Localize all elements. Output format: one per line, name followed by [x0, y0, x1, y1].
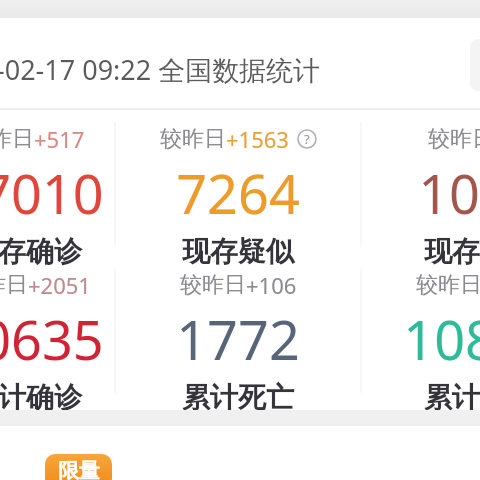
staticText: +2051 [28, 270, 91, 300]
staticText: 现存疑似 [182, 234, 294, 269]
button[interactable]: 较昨日 [150, 116, 326, 269]
staticText: 较昨日 [0, 271, 28, 299]
staticText: 较昨日 [0, 125, 34, 153]
staticText: 累计死亡 [182, 380, 294, 415]
staticText: 较昨日 [180, 271, 246, 299]
staticText: 27010 [0, 156, 104, 230]
staticText: 10844 [403, 302, 480, 376]
staticText: 1772 [176, 302, 300, 376]
staticText: ? [304, 130, 310, 148]
staticText: +106 [246, 270, 297, 300]
staticText: +1563 [226, 124, 289, 154]
button[interactable]: 较昨日 [0, 262, 114, 415]
button[interactable]: 说明 [297, 129, 317, 149]
staticText: 累计治愈 [424, 380, 480, 415]
button[interactable]: 限量 [45, 454, 112, 480]
staticText: 限量 [58, 458, 100, 480]
button[interactable]: 较昨日 [392, 262, 480, 415]
button[interactable]: 较昨日 [0, 116, 114, 269]
staticText: 7264 [176, 156, 300, 230]
staticText: 较昨日 [416, 271, 480, 299]
button[interactable]: 较昨日 [392, 116, 480, 269]
staticText: 1066 [418, 156, 480, 230]
staticText: 现存重症 [424, 234, 480, 269]
staticText: 较昨日 [160, 125, 226, 153]
staticText: 累计确诊 [0, 380, 82, 415]
button[interactable]: -02-17 09:22 全国数据统计 [0, 18, 480, 108]
staticText: 70635 [0, 302, 104, 376]
staticText: 较昨日 [428, 125, 480, 153]
staticText: -02-17 09:22 全国数据统计 [0, 51, 321, 88]
staticText: 现存确诊 [0, 234, 82, 269]
button[interactable]: 较昨日 [150, 262, 326, 415]
staticText: +517 [34, 124, 85, 154]
